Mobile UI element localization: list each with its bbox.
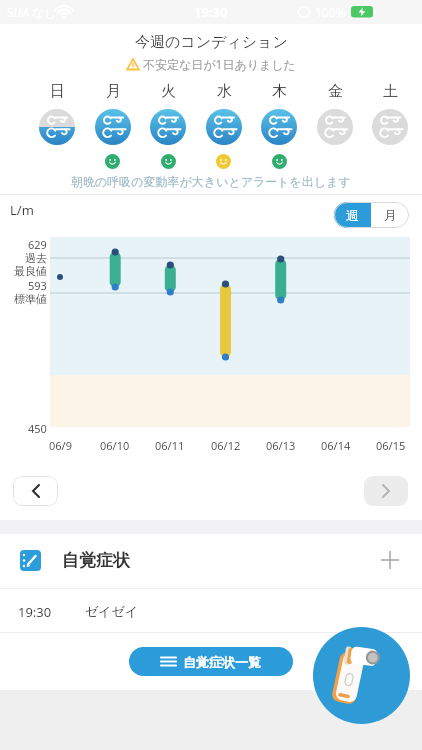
- staticText: 100%: [315, 4, 346, 20]
- staticText: 06/12: [211, 438, 241, 453]
- staticText: 不安定な日が1日ありました: [143, 56, 296, 72]
- staticText: 629: [28, 237, 47, 252]
- staticText: 水: [217, 82, 232, 101]
- staticText: 日: [50, 82, 65, 101]
- staticText: 06/11: [155, 438, 185, 453]
- staticText: 自覚症状: [62, 550, 130, 571]
- staticText: 木: [272, 82, 287, 101]
- staticText: 06/9: [49, 438, 72, 453]
- staticText: ゼイゼイ: [85, 603, 139, 619]
- staticText: 19:30: [18, 603, 52, 621]
- staticText: 06/13: [266, 438, 296, 453]
- button[interactable]: [13, 476, 58, 506]
- staticText: 06/14: [321, 438, 351, 453]
- staticText: 06/15: [376, 438, 406, 453]
- staticText: 19:30: [194, 3, 228, 21]
- staticText: 金: [328, 82, 343, 101]
- button[interactable]: [313, 627, 410, 724]
- staticText: 今週のコンディション: [135, 33, 288, 52]
- button[interactable]: [381, 551, 399, 569]
- staticText: 月: [384, 207, 397, 223]
- staticText: 593: [28, 278, 47, 293]
- staticText: SIM なし: [7, 4, 57, 20]
- staticText: 火: [161, 82, 176, 101]
- staticText: 過去: [25, 251, 47, 265]
- button[interactable]: 週: [334, 202, 371, 228]
- staticText: 自覚症状一覧: [183, 654, 261, 670]
- staticText: 最良値: [14, 264, 47, 278]
- staticText: L/m: [10, 201, 34, 219]
- button[interactable]: 自覚症状一覧: [129, 647, 293, 676]
- button[interactable]: [364, 476, 408, 506]
- staticText: 土: [383, 82, 398, 101]
- staticText: 週: [346, 207, 359, 223]
- staticText: 450: [28, 421, 47, 436]
- button[interactable]: 月: [371, 202, 409, 228]
- staticText: 06/10: [100, 438, 130, 453]
- staticText: 標準値: [14, 292, 47, 306]
- staticText: 朝晩の呼吸の変動率が大きいとアラートを出します: [71, 174, 351, 189]
- staticText: 月: [106, 82, 121, 101]
